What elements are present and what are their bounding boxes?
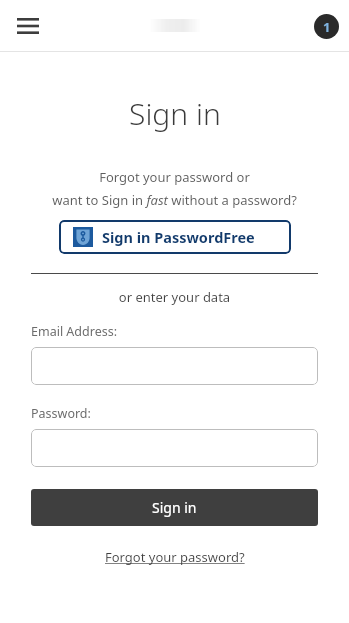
button[interactable]: Menu [10,8,46,44]
staticText: Sign in [129,93,221,134]
button[interactable]: Sign in [31,489,318,526]
staticText: or enter your data [31,288,318,306]
button[interactable]: Forgot your password? [101,544,249,570]
staticText: Email Address: [31,323,118,340]
staticText: Sign in PasswordFree [102,227,255,247]
button[interactable]: Sign in PasswordFree [59,220,291,254]
button[interactable] [31,347,318,385]
staticText: Forgot your password or [31,168,318,186]
staticText: want to Sign in fast without a password? [31,191,318,209]
button[interactable]: Logo [149,19,201,32]
staticText: Sign in [152,498,197,517]
staticText: 1 [323,18,331,36]
button[interactable]: Cart, 1 item [309,9,343,43]
button[interactable] [31,429,318,467]
staticText: Password: [31,405,91,422]
staticText: Forgot your password? [105,548,245,566]
